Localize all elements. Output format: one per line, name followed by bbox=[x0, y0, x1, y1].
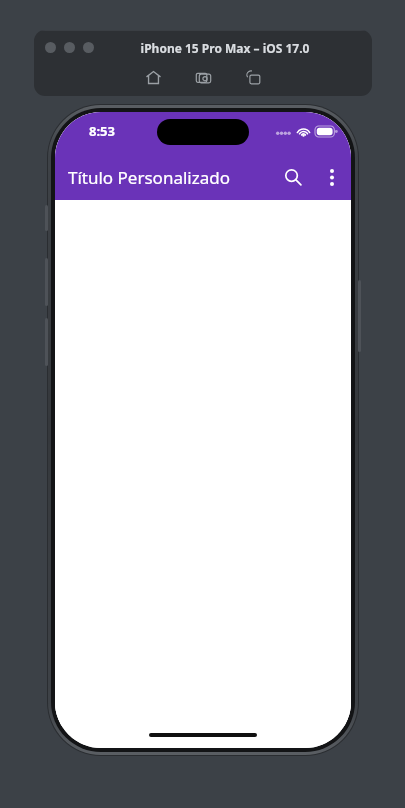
staticText: Título Personalizado bbox=[68, 166, 230, 189]
staticText: 8:53 bbox=[89, 122, 115, 140]
button[interactable] bbox=[64, 42, 75, 53]
button[interactable] bbox=[45, 42, 56, 53]
button[interactable]: Screenshot bbox=[192, 66, 214, 88]
button[interactable]: Search bbox=[273, 157, 313, 197]
button[interactable]: Home bbox=[142, 66, 164, 88]
staticText: iPhone 15 Pro Max – iOS 17.0 bbox=[110, 40, 340, 56]
button[interactable]: More options bbox=[313, 158, 351, 196]
button[interactable]: Rotate bbox=[242, 66, 264, 88]
button[interactable] bbox=[83, 42, 94, 53]
